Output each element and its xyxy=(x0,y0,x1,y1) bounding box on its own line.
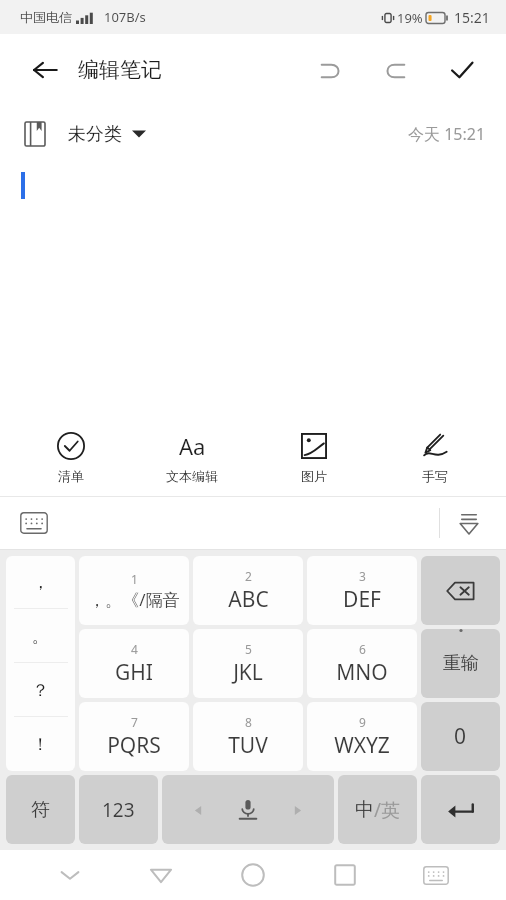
staticText: 中 xyxy=(355,798,374,822)
button[interactable]: 重输 xyxy=(421,629,500,698)
button[interactable]: Keyboard layout xyxy=(12,501,56,545)
staticText: 编辑笔记 xyxy=(78,57,162,83)
staticText: /英 xyxy=(374,797,401,823)
staticText: 4 xyxy=(131,641,138,657)
button[interactable]: Hide keyboard xyxy=(38,851,102,899)
button[interactable]: Home xyxy=(221,851,285,899)
button[interactable]: 图片 xyxy=(264,418,364,496)
button[interactable]: Back xyxy=(129,851,193,899)
staticText: 手写 xyxy=(422,468,448,484)
staticText: ABC xyxy=(228,585,269,614)
staticText: 图片 xyxy=(301,468,327,484)
button[interactable]: Aa xyxy=(142,418,242,496)
button[interactable]: 3 xyxy=(307,556,417,625)
staticText: 5 xyxy=(245,641,252,657)
button[interactable]: Undo xyxy=(306,46,354,94)
button[interactable]: 手写 xyxy=(385,418,485,496)
staticText: 未分类 xyxy=(68,123,122,146)
staticText: WXYZ xyxy=(334,731,390,760)
button[interactable]: 2 xyxy=(193,556,303,625)
button[interactable]: Back xyxy=(28,53,62,87)
staticText: ，。《/隔音 xyxy=(88,588,180,611)
staticText: TUV xyxy=(228,731,268,760)
staticText: ？ xyxy=(32,680,49,701)
button[interactable]: Redo xyxy=(372,46,420,94)
staticText: 中国电信 xyxy=(20,9,72,25)
button[interactable]: 4 xyxy=(79,629,189,698)
button[interactable]: Hide keyboard xyxy=(440,497,498,549)
staticText: 符 xyxy=(31,798,50,822)
button[interactable]: 5 xyxy=(193,629,303,698)
button[interactable]: 6 xyxy=(307,629,417,698)
button[interactable]: Switch keyboard xyxy=(404,851,468,899)
staticText: ！ xyxy=(32,734,49,755)
staticText: Aa xyxy=(179,431,206,461)
staticText: PQRS xyxy=(107,731,161,760)
staticText: 9 xyxy=(359,714,366,730)
button[interactable]: 123 xyxy=(79,775,158,844)
staticText: 1 xyxy=(131,571,138,587)
staticText: 2 xyxy=(245,568,252,584)
button[interactable]: 符 xyxy=(6,775,75,844)
button[interactable]: 未分类 xyxy=(24,121,146,147)
staticText: 107B/s xyxy=(104,8,146,26)
staticText: 15:21 xyxy=(454,8,490,27)
staticText: GHI xyxy=(115,658,153,687)
staticText: ， xyxy=(32,572,49,593)
button[interactable]: ， xyxy=(6,556,75,771)
staticText: 7 xyxy=(131,714,138,730)
button[interactable]: 1 xyxy=(79,556,189,625)
button[interactable]: 清单 xyxy=(21,418,121,496)
button[interactable]: Voice input / Space xyxy=(162,775,334,844)
staticText: 清单 xyxy=(58,468,84,484)
staticText: 123 xyxy=(102,797,135,823)
staticText: 0 xyxy=(454,722,467,751)
button[interactable]: Save xyxy=(438,46,486,94)
staticText: 3 xyxy=(359,568,366,584)
staticText: 8 xyxy=(245,714,252,730)
button[interactable]: Enter xyxy=(421,775,500,844)
staticText: 今天 15:21 xyxy=(408,123,486,145)
staticText: DEF xyxy=(343,585,381,614)
button[interactable]: Recents xyxy=(313,851,377,899)
staticText: 文本编辑 xyxy=(166,468,218,484)
staticText: 19% xyxy=(397,9,423,27)
button[interactable]: 中 xyxy=(338,775,417,844)
staticText: 。 xyxy=(32,626,49,647)
staticText: 6 xyxy=(359,641,366,657)
staticText: 重输 xyxy=(443,652,479,675)
staticText: JKL xyxy=(233,658,263,687)
button[interactable]: 7 xyxy=(79,702,189,771)
staticText: MNO xyxy=(336,658,388,687)
button[interactable]: 8 xyxy=(193,702,303,771)
button[interactable]: 9 xyxy=(307,702,417,771)
button[interactable]: 0 xyxy=(421,702,500,771)
button[interactable]: Backspace xyxy=(421,556,500,625)
